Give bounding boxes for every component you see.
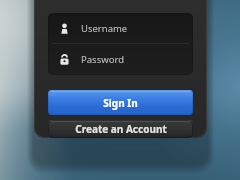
- button[interactable]: Sign In: [48, 90, 193, 115]
- button[interactable]: Password: [48, 44, 193, 75]
- staticText: Username: [81, 22, 128, 35]
- staticText: Create an Account: [75, 122, 167, 136]
- button[interactable]: Create an Account: [48, 120, 193, 138]
- other: Username: [59, 23, 70, 34]
- button[interactable]: Username: [48, 13, 193, 43]
- other: Password: [59, 54, 70, 65]
- staticText: Password: [81, 53, 124, 66]
- staticText: Sign In: [103, 96, 138, 110]
